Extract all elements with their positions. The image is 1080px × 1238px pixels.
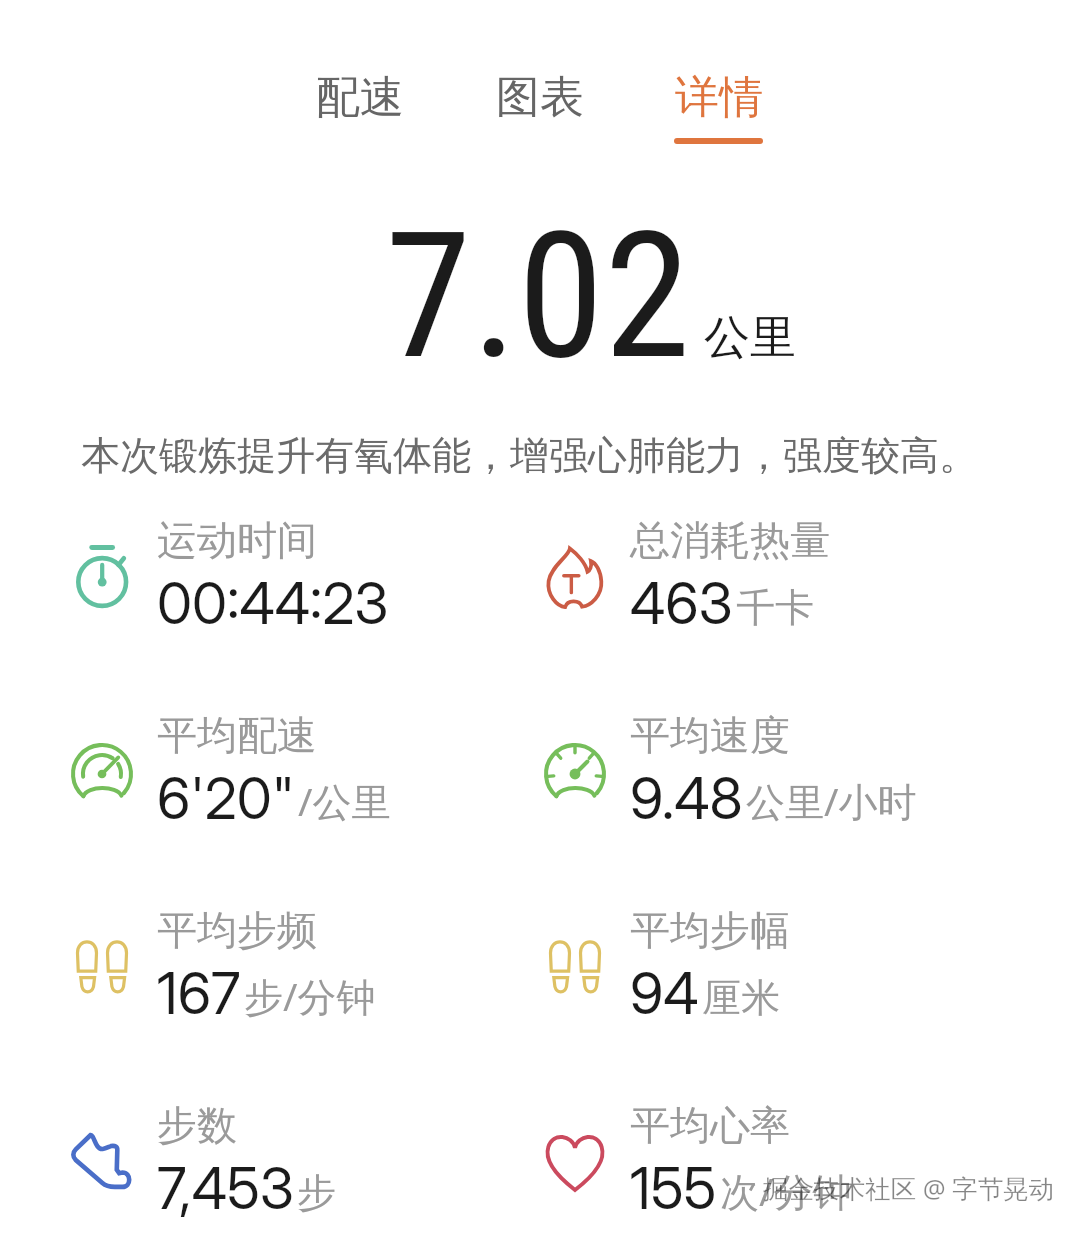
staticText: 9.48 — [630, 764, 743, 833]
staticText: 本次锻炼提升有氧体能，增强心肺能力，强度较高。 — [81, 431, 978, 480]
button[interactable]: 配速 — [287, 70, 433, 182]
staticText: 掘金技术社区 @ 字节晃动 — [763, 1171, 1055, 1206]
button[interactable]: 平均步频 — [54, 886, 494, 1056]
staticText: 步 — [297, 1168, 336, 1217]
button[interactable]: 平均步幅 — [527, 886, 967, 1056]
staticText: 图表 — [496, 70, 584, 125]
staticText: 总消耗热量 — [630, 515, 830, 565]
button[interactable]: 平均配速 — [54, 691, 494, 861]
staticText: 次/分钟 — [720, 1164, 852, 1217]
staticText: 00:44:23 — [157, 569, 389, 638]
button[interactable]: 运动时间 — [54, 496, 494, 666]
staticText: 94 — [630, 959, 699, 1028]
staticText: 平均心率 — [630, 1100, 790, 1150]
staticText: 463 — [630, 569, 733, 638]
staticText: 平均步频 — [157, 905, 317, 955]
button[interactable]: 详情 — [645, 70, 791, 182]
staticText: 6'20" — [157, 764, 295, 833]
button[interactable]: 图表 — [467, 70, 613, 182]
button[interactable]: 平均心率 — [527, 1081, 967, 1238]
button[interactable]: 平均速度 — [527, 691, 967, 861]
staticText: 运动时间 — [157, 515, 317, 565]
staticText: 公里 — [704, 309, 796, 367]
staticText: 厘米 — [702, 973, 780, 1022]
button[interactable]: 步数 — [54, 1081, 494, 1238]
staticText: 步数 — [157, 1100, 237, 1150]
staticText: 平均速度 — [630, 710, 790, 760]
staticText: 7.02 — [385, 194, 691, 399]
staticText: 步/分钟 — [244, 969, 376, 1022]
button[interactable]: 总消耗热量 — [527, 496, 967, 666]
staticText: 配速 — [316, 70, 404, 125]
staticText: 7,453 — [157, 1154, 294, 1223]
staticText: 155 — [630, 1154, 717, 1223]
staticText: /公里 — [298, 774, 391, 827]
staticText: 公里/小时 — [746, 774, 917, 827]
staticText: 平均步幅 — [630, 905, 790, 955]
staticText: 详情 — [675, 70, 763, 125]
staticText: 167 — [157, 959, 241, 1028]
staticText: 平均配速 — [157, 710, 317, 760]
staticText: 千卡 — [736, 583, 814, 632]
